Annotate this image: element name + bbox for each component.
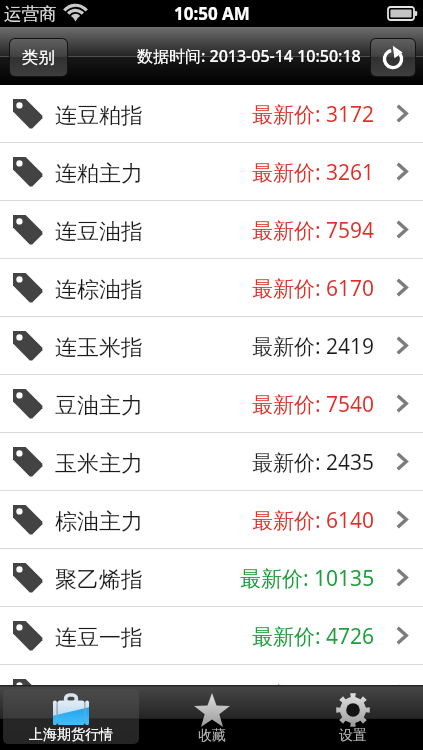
button[interactable]: 连玉米指 [0, 317, 423, 374]
staticText: 收藏 [198, 727, 226, 745]
button[interactable]: 设置 [285, 689, 421, 745]
button[interactable]: 聚乙烯指 [0, 549, 423, 606]
button[interactable]: 上海期货行情 [3, 689, 139, 744]
staticText: 最新价: 2419 [252, 332, 375, 361]
staticText: 连豆一指 [55, 624, 143, 652]
button[interactable]: 收藏 [144, 689, 280, 745]
staticText: 连粕主力 [55, 160, 143, 188]
staticText: 最新价: 3172 [252, 100, 375, 129]
button[interactable]: 棕油主力 [0, 491, 423, 548]
staticText: 最新价: 3261 [252, 158, 375, 187]
button[interactable]: Refresh [371, 39, 415, 76]
staticText: 最新价: 4726 [252, 622, 375, 651]
button[interactable]: 连棕油指 [0, 259, 423, 316]
staticText: 最新价: 6140 [252, 506, 375, 535]
button[interactable]: 连豆粕指 [0, 85, 423, 142]
staticText: 10:50 AM [174, 2, 250, 25]
staticText: 玉米主力 [55, 450, 143, 478]
staticText: 聚乙烯指 [55, 566, 143, 594]
staticText: 运营商 [4, 3, 57, 25]
staticText: 设置 [339, 727, 367, 745]
staticText: 棕油主力 [55, 508, 143, 536]
staticText: 最新价: 6170 [252, 274, 375, 303]
staticText: 连豆油指 [55, 218, 143, 246]
staticText: 豆油主力 [55, 392, 143, 420]
staticText: 最新价: 3172 [252, 680, 375, 685]
staticText: 连玉米指 [55, 334, 143, 362]
button[interactable]: 玉米主力 [0, 433, 423, 490]
button[interactable]: 连豆油指 [0, 201, 423, 258]
staticText: 连棕油指 [55, 276, 143, 304]
staticText: 最新价: 2435 [252, 448, 375, 477]
staticText: 上海期货行情 [29, 726, 113, 744]
button[interactable]: 类别 [10, 39, 67, 76]
button[interactable]: 豆油主力 [0, 375, 423, 432]
staticText: 最新价: 10135 [240, 564, 375, 593]
staticText: 连豆粕指 [55, 102, 143, 130]
button[interactable]: 连粕主力 [0, 143, 423, 200]
staticText: 最新价: 7594 [252, 216, 375, 245]
button[interactable]: 连豆粕指 [0, 665, 423, 685]
staticText: 最新价: 7540 [252, 390, 375, 419]
button[interactable]: 连豆一指 [0, 607, 423, 664]
staticText: 类别 [22, 47, 55, 68]
staticText: 数据时间: 2013-05-14 10:50:18 [137, 45, 361, 67]
